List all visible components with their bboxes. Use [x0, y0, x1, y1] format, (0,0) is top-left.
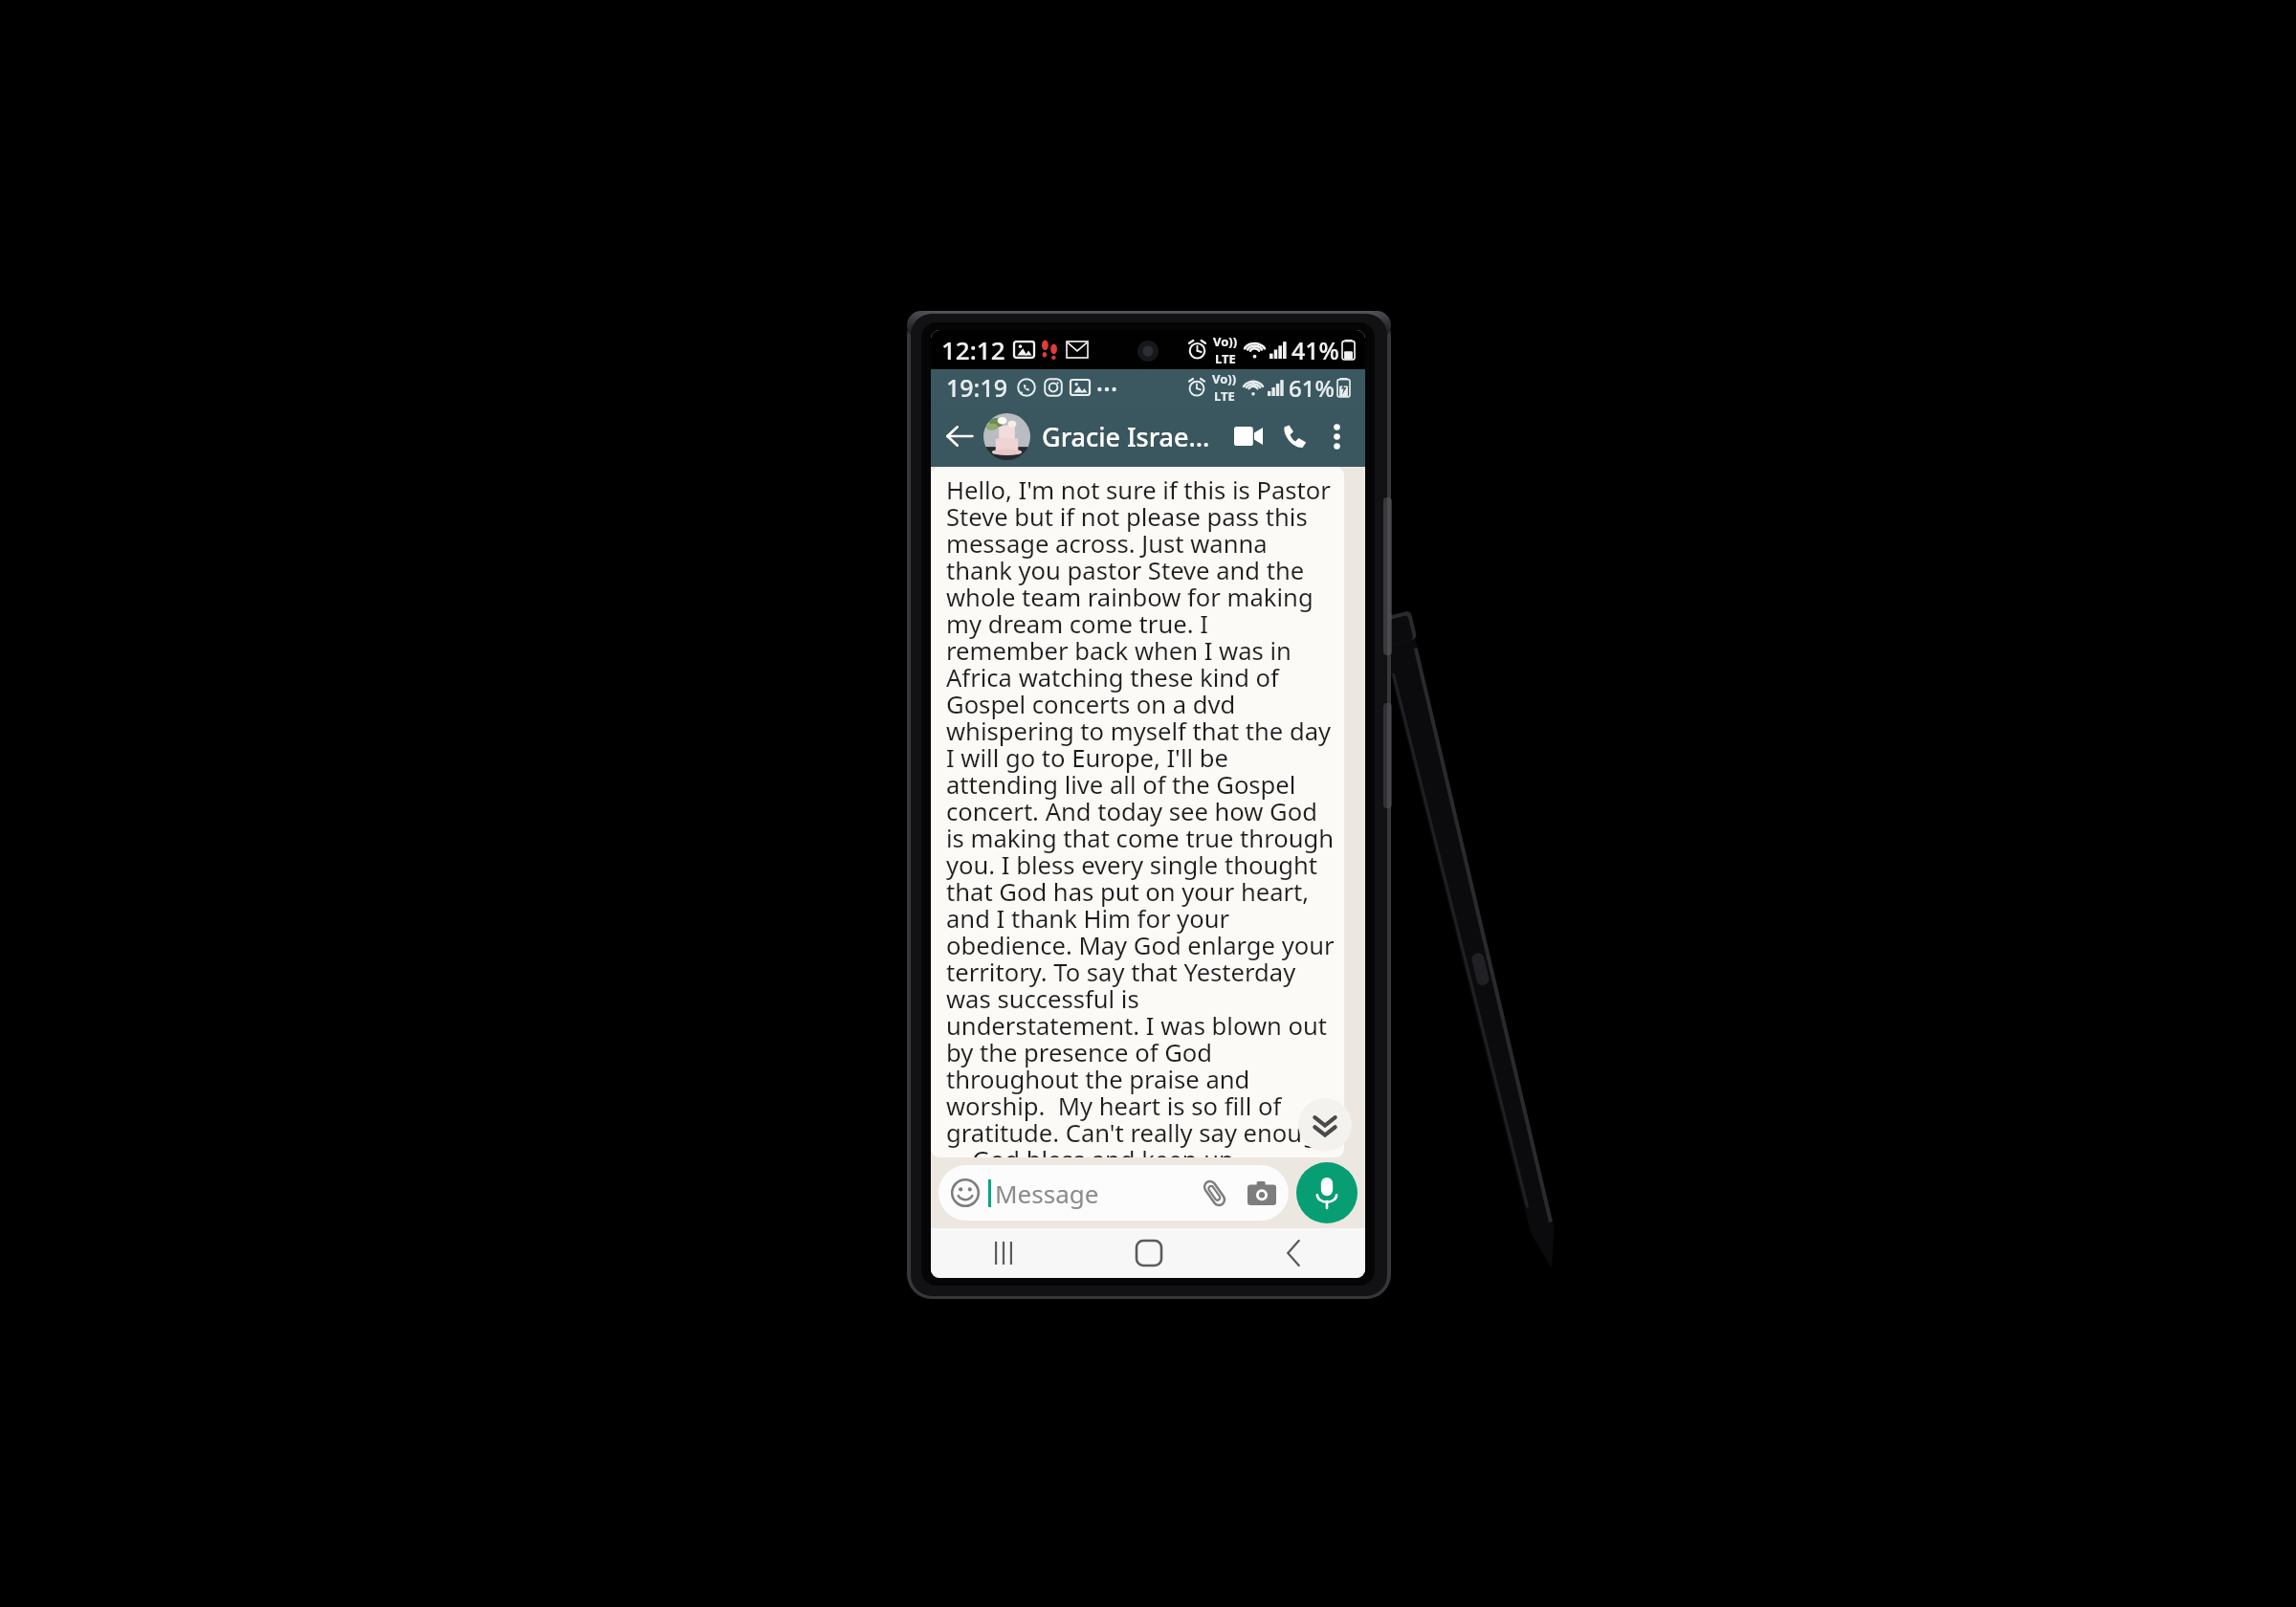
button[interactable]: Hello, I'm not sure if this is Pastor St…	[931, 467, 1344, 1157]
button[interactable]: Recent apps	[931, 1228, 1076, 1278]
button[interactable]: Back	[938, 415, 981, 457]
button[interactable]: Record voice message	[1296, 1162, 1358, 1223]
button[interactable]: Video call	[1225, 413, 1271, 459]
button[interactable]: Message	[938, 1165, 1289, 1221]
staticText: 12:12	[941, 333, 1005, 366]
button[interactable]: Back	[1221, 1228, 1365, 1278]
button[interactable]: More options	[1317, 417, 1356, 455]
staticText: Message	[995, 1177, 1099, 1210]
button[interactable]: Voice call	[1271, 413, 1317, 459]
staticText: Hello, I'm not sure if this is Pastor St…	[946, 473, 1335, 1157]
staticText: LTE	[1215, 350, 1236, 367]
button[interactable]: Scroll to bottom	[1298, 1098, 1352, 1152]
button[interactable]: Attach	[1201, 1179, 1228, 1207]
button[interactable]: Gracie Israe…	[1042, 419, 1210, 454]
staticText: LTE	[1214, 387, 1235, 405]
staticText: 61%	[1289, 372, 1335, 404]
button[interactable]: Home	[1076, 1228, 1221, 1278]
button[interactable]: Camera	[1247, 1181, 1276, 1205]
staticText: Vo))	[1213, 333, 1238, 350]
button[interactable]: Profile photo	[983, 413, 1030, 460]
staticText: Vo))	[1212, 370, 1237, 387]
staticText: 41%	[1291, 334, 1339, 366]
staticText: 19:19	[946, 371, 1008, 404]
